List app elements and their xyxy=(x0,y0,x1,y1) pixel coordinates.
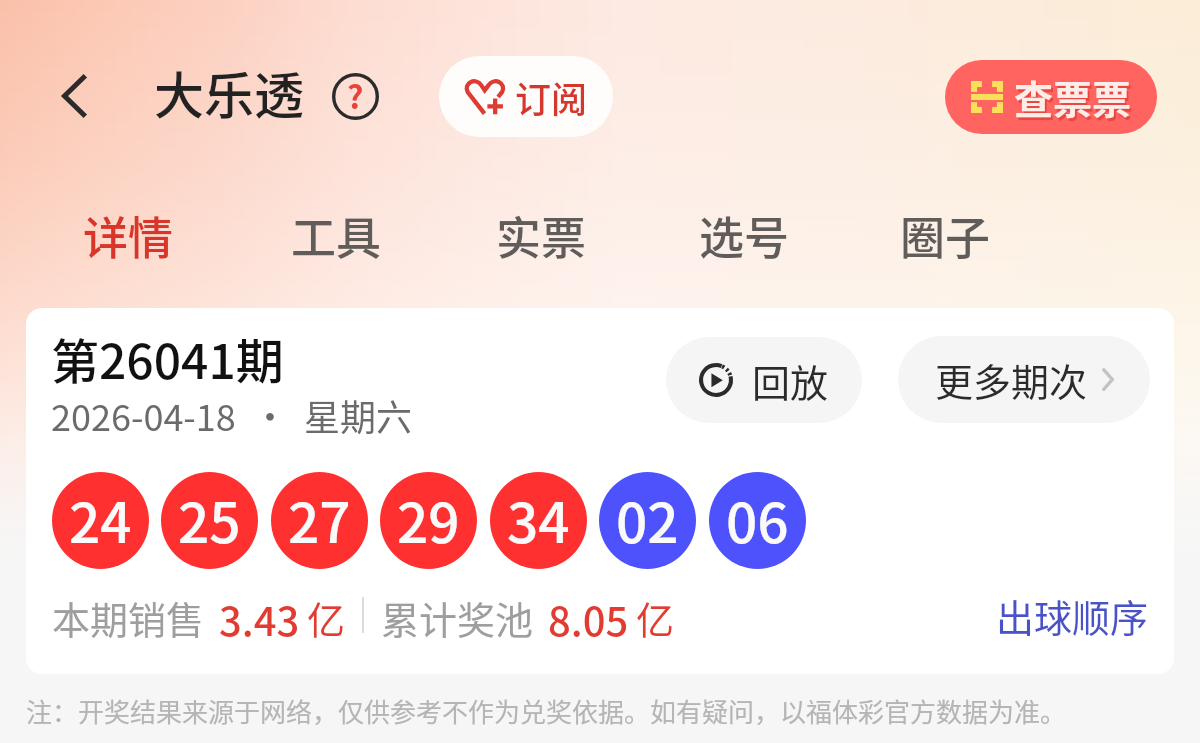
button[interactable]: 工具 xyxy=(278,196,394,274)
staticText: 25 xyxy=(178,479,241,559)
staticText: 亿 xyxy=(636,590,675,640)
staticText: 更多期次 xyxy=(935,352,1088,407)
staticText: 29 xyxy=(397,479,460,559)
staticText: 亿 xyxy=(307,590,346,640)
staticText: 大乐透 xyxy=(154,56,304,128)
button[interactable]: 出球顺序 xyxy=(972,588,1172,642)
staticText: 06 xyxy=(726,479,789,559)
staticText: 累计奖池 xyxy=(381,590,534,640)
button[interactable]: 订阅 xyxy=(439,56,613,137)
staticText: 实票 xyxy=(496,203,587,268)
staticText: 34 xyxy=(507,479,570,559)
button[interactable]: Help xyxy=(330,71,380,121)
staticText: 查票票 xyxy=(1016,72,1134,128)
staticText: 24 xyxy=(69,479,132,559)
button[interactable]: 回放 xyxy=(666,337,862,423)
staticText: ? xyxy=(347,72,364,118)
staticText: 选号 xyxy=(699,203,790,268)
staticText: 本期销售 xyxy=(52,590,205,640)
staticText: 订阅 xyxy=(515,71,588,123)
button[interactable]: 查票票 xyxy=(945,60,1157,134)
staticText: 第26041期 xyxy=(51,323,284,393)
staticText: 3.43 xyxy=(219,590,300,640)
button[interactable]: 选号 xyxy=(686,196,802,274)
staticText: 回放 xyxy=(752,353,829,408)
staticText: 02 xyxy=(616,479,679,559)
staticText: 8.05 xyxy=(548,590,629,640)
button[interactable]: 实票 xyxy=(483,196,599,274)
button[interactable]: 圈子 xyxy=(887,196,1003,274)
staticText: 工具 xyxy=(291,203,382,268)
staticText: 详情 xyxy=(83,203,174,268)
button[interactable]: 详情 xyxy=(70,196,186,274)
staticText: 注：开奖结果来源于网络，仅供参考不作为兑奖依据。如有疑问，以福体彩官方数据为准。 xyxy=(26,692,1067,730)
staticText: 查票票 xyxy=(1014,69,1132,125)
staticText: 圈子 xyxy=(900,203,991,268)
staticText: 出球顺序 xyxy=(996,588,1149,642)
button[interactable]: Back xyxy=(44,66,104,126)
staticText: 2026-04-18 · 星期六 xyxy=(51,389,413,441)
staticText: 27 xyxy=(288,479,351,559)
button[interactable]: 更多期次 xyxy=(898,336,1150,423)
